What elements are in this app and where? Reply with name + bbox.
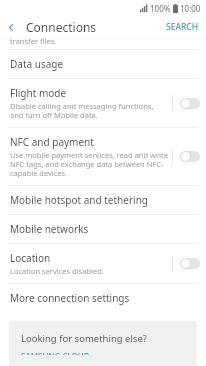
staticText: Use mobile payment services, read and wr… [10, 150, 168, 178]
staticText: More connection settings [10, 291, 130, 305]
staticText: Location services disabled. [10, 266, 104, 276]
staticText: Disable calling and messaging functions,… [10, 101, 168, 120]
button[interactable]: More connection settings [0, 284, 206, 312]
staticText: SEARCH [166, 21, 199, 33]
staticText: SAMSUNG CLOUD [21, 351, 90, 355]
button[interactable]: Mobile hotspot and tethering [0, 186, 206, 214]
staticText: Looking for something else? [21, 332, 147, 345]
button[interactable]: NFC and payment [0, 128, 206, 185]
button[interactable]: SAMSUNG CLOUD [21, 351, 90, 355]
button[interactable]: Flight mode switch [174, 92, 206, 115]
button[interactable]: Flight mode [0, 79, 206, 127]
staticText: 100% [150, 3, 171, 14]
staticText: transfer files. [10, 36, 57, 46]
staticText: 10:00 [180, 3, 201, 14]
staticText: Mobile networks [10, 222, 89, 236]
staticText: NFC and payment [10, 135, 94, 149]
button[interactable]: Navigate up [0, 16, 22, 38]
button[interactable]: SEARCH [159, 17, 206, 37]
button[interactable]: Location [0, 244, 206, 283]
staticText: Location [10, 251, 51, 265]
button[interactable]: NFC and payment switch [174, 145, 206, 168]
staticText: Mobile hotspot and tethering [10, 193, 148, 207]
staticText: Flight mode [10, 86, 67, 100]
button[interactable]: Mobile networks [0, 215, 206, 243]
button[interactable]: Location switch [174, 252, 206, 275]
staticText: Data usage [10, 57, 64, 71]
button[interactable]: Data usage [0, 50, 206, 78]
staticText: Connections [26, 19, 97, 35]
